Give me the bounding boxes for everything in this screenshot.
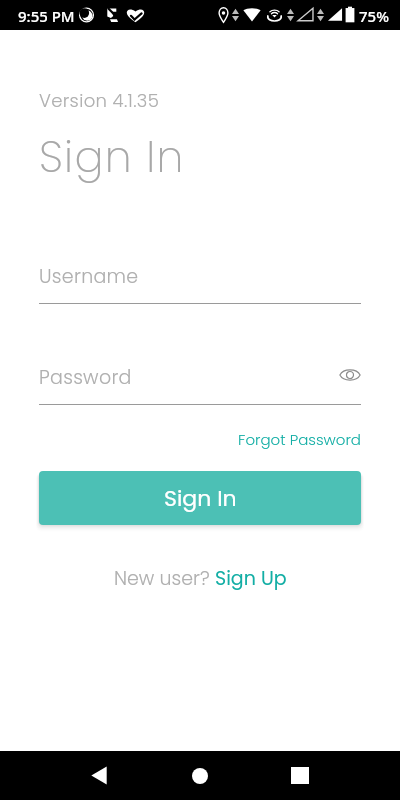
staticText: Sign In [164, 483, 237, 514]
staticText: Sign In [39, 127, 185, 187]
staticText: New user? [114, 565, 215, 592]
button[interactable]: Home [176, 751, 224, 800]
button[interactable]: Sign In [39, 471, 361, 525]
staticText: 75% [359, 6, 389, 26]
button[interactable]: Show password [336, 361, 364, 389]
button[interactable]: Sign Up [215, 565, 287, 592]
button[interactable]: Forgot Password [39, 429, 361, 450]
staticText: Username [39, 263, 139, 290]
staticText: Version 4.1.35 [39, 88, 160, 113]
staticText: 9:55 PM [18, 6, 75, 26]
staticText: Password [39, 364, 132, 391]
button[interactable]: Recents [276, 751, 324, 800]
button[interactable]: Back [75, 751, 123, 800]
